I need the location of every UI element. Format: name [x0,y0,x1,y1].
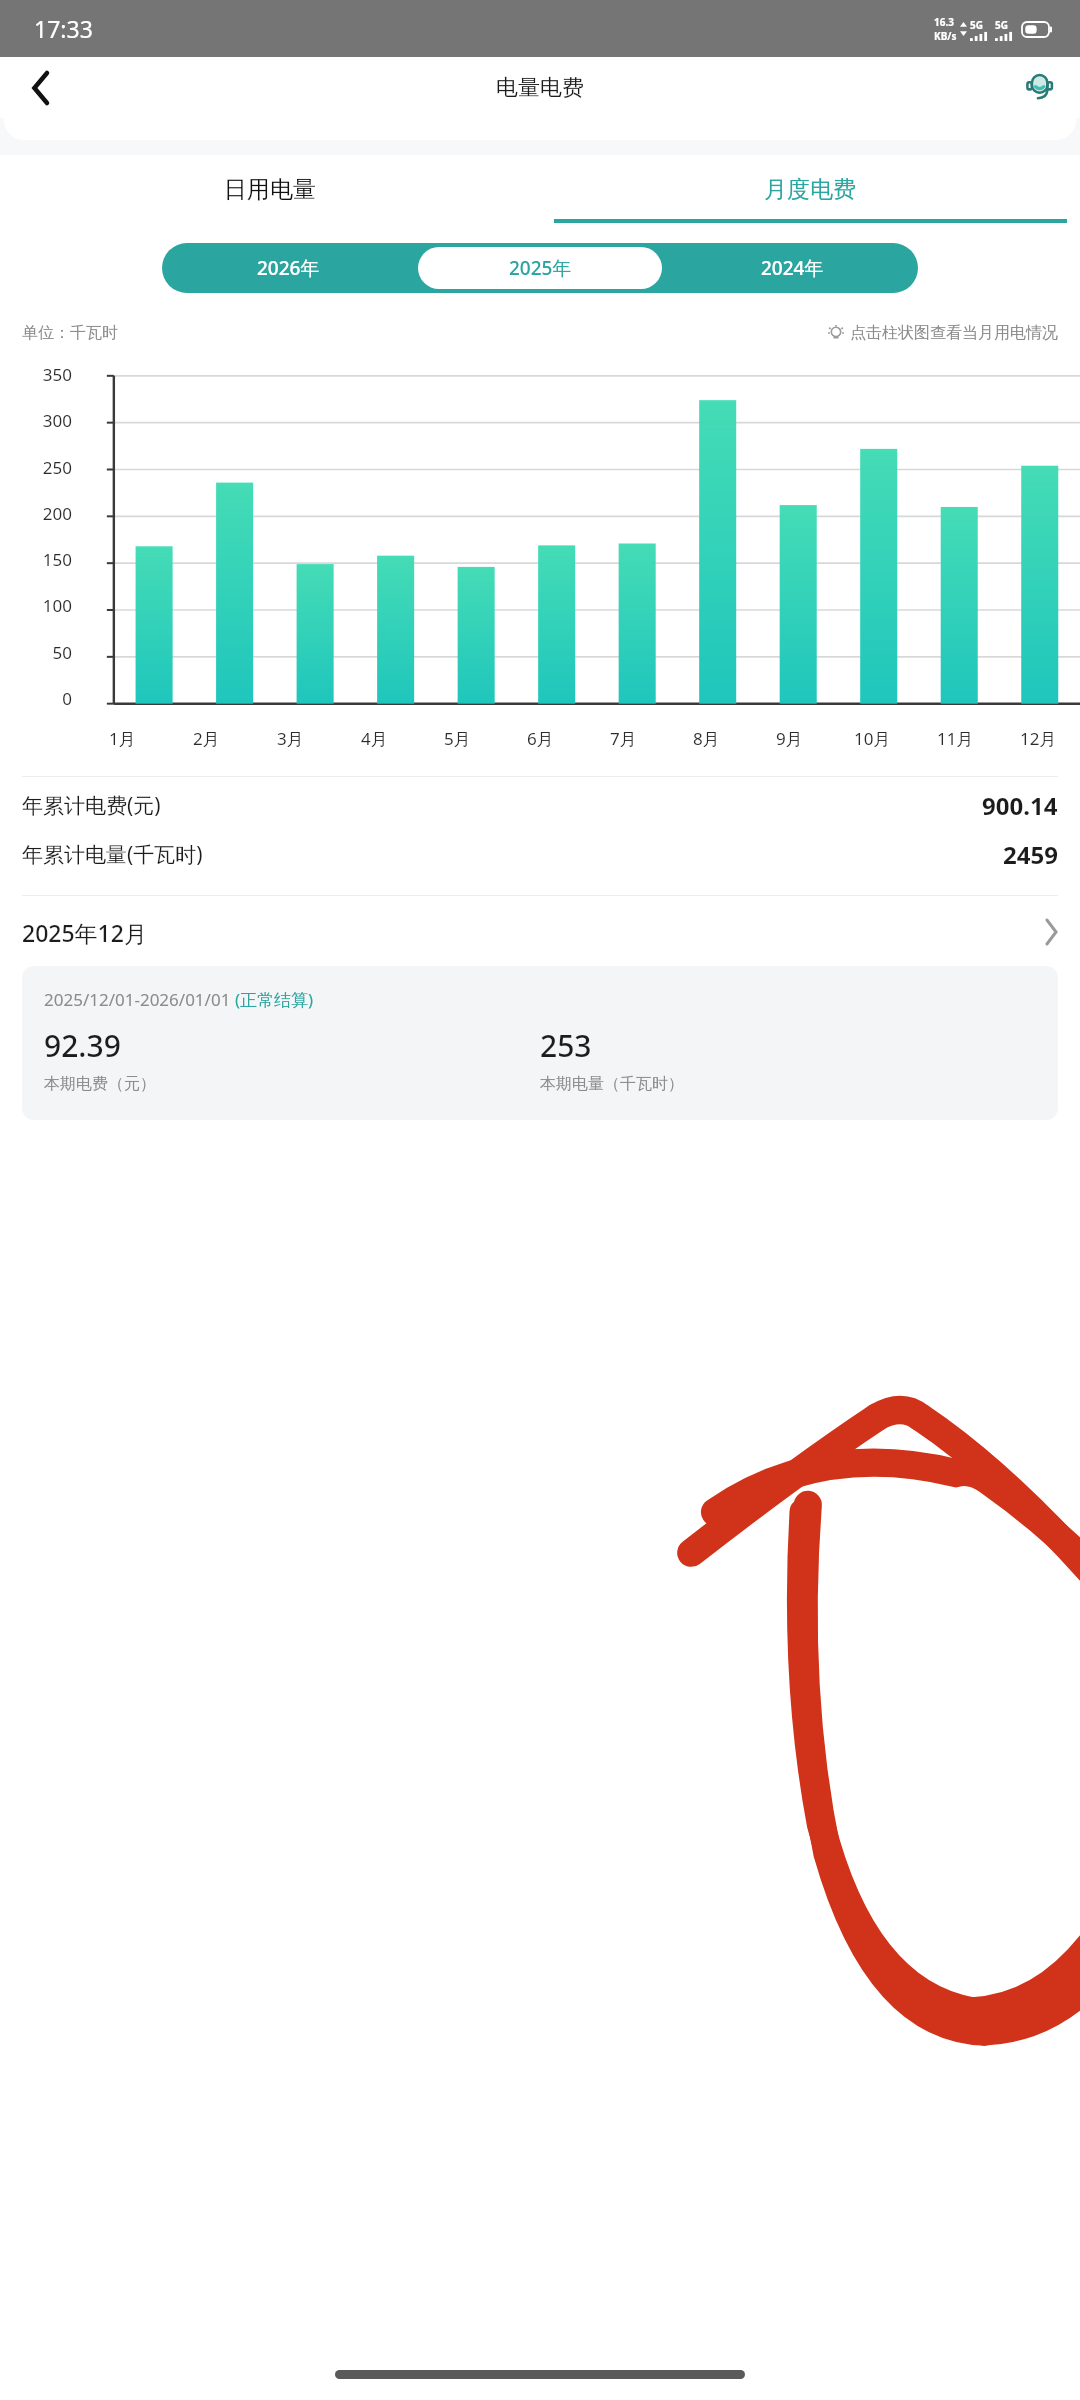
staticText: 5G [995,18,1008,32]
staticText: 900.14 [982,789,1058,822]
staticText: 1月 [109,727,136,750]
staticText: 250 [42,456,72,479]
button[interactable]: 350 [0,353,1080,768]
staticText: 10月 [854,727,891,750]
staticText: 12月 [1020,727,1057,750]
button[interactable]: 年累计电费(元) [22,789,1058,822]
staticText: 单位：千瓦时 [22,323,118,343]
staticText: 2026年 [257,255,320,281]
staticText: 月度电费 [764,175,856,204]
staticText: 点击柱状图查看当月用电情况 [850,323,1058,343]
staticText: 3月 [277,727,304,750]
button[interactable]: 日用电量 [0,155,540,223]
staticText: 2459 [1003,838,1058,871]
staticText: 16.3 [934,15,954,29]
staticText: 年累计电量(千瓦时) [22,840,203,869]
button[interactable]: 年累计电量(千瓦时) [22,838,1058,871]
staticText: 7月 [610,727,637,750]
staticText: 9月 [776,727,803,750]
staticText: 4月 [361,727,388,750]
staticText: 200 [42,502,72,525]
button[interactable]: 返回 [18,64,66,112]
staticText: 2025年 [509,255,572,281]
staticText: 92.39 [44,1025,121,1066]
button[interactable]: 2025年12月 [22,910,1058,954]
staticText: 电量电费 [496,74,584,102]
staticText: 5月 [444,727,471,750]
staticText: 150 [42,548,72,571]
staticText: 11月 [937,727,974,750]
button[interactable]: 月度电费 [540,155,1080,223]
staticText: 日用电量 [224,175,316,204]
staticText: 6月 [527,727,554,750]
staticText: 年累计电费(元) [22,791,161,820]
button[interactable]: 2025/12/01-2026/01/01 [22,966,1058,1120]
staticText: 2024年 [761,255,824,281]
button[interactable]: 2026年 [166,247,410,289]
staticText: 350 [42,363,72,386]
staticText: 本期电费（元） [44,1074,156,1094]
staticText: 8月 [693,727,720,750]
staticText: 2025/12/01-2026/01/01 [44,988,235,1011]
staticText: (正常结算) [235,988,314,1011]
staticText: 100 [42,594,72,617]
staticText: 5G [970,18,983,32]
staticText: 0 [62,687,72,710]
staticText: 2025年12月 [22,917,147,948]
staticText: 300 [42,409,72,432]
button[interactable]: 2025年 [418,247,662,289]
button[interactable]: 2024年 [670,247,914,289]
staticText: 2月 [193,727,220,750]
staticText: 253 [540,1025,592,1066]
staticText: KB/s [934,29,957,43]
staticText: 50 [52,641,72,664]
staticText: 17:33 [34,13,93,44]
staticText: 本期电量（千瓦时） [540,1074,684,1094]
button[interactable]: 客服 [1016,64,1064,112]
